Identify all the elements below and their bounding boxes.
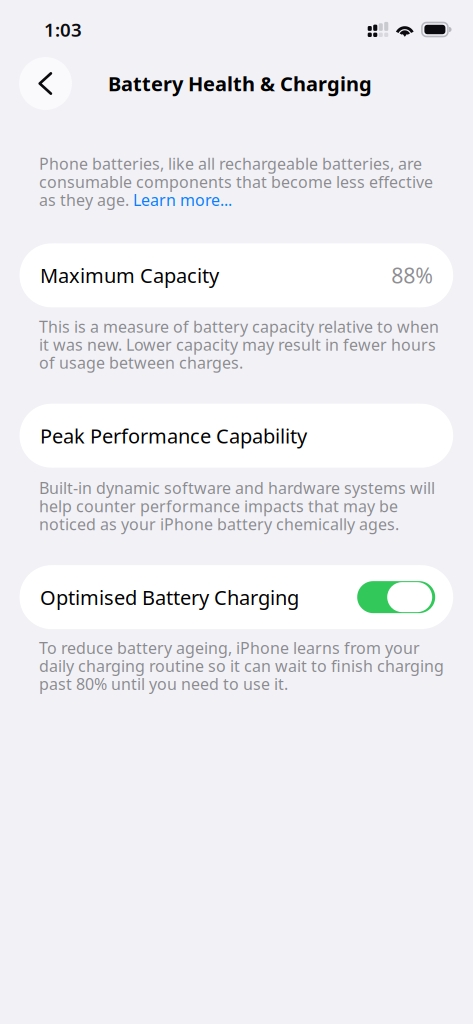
staticText: Optimised Battery Charging xyxy=(40,584,299,610)
button[interactable]: Back xyxy=(19,57,72,110)
staticText: Maximum Capacity xyxy=(40,262,219,289)
staticText: help counter performance impacts that ma… xyxy=(39,495,398,516)
staticText: Learn more... xyxy=(133,189,232,210)
staticText: consumable components that become less e… xyxy=(39,171,433,192)
staticText: To reduce battery ageing, iPhone learns … xyxy=(39,637,420,658)
staticText: Peak Performance Capability xyxy=(40,422,307,449)
staticText: 1:03 xyxy=(44,17,82,42)
staticText: as they age. xyxy=(39,189,133,210)
button[interactable]: Learn more... xyxy=(133,189,232,210)
staticText: This is a measure of battery capacity re… xyxy=(39,316,439,337)
staticText: past 80% until you need to use it. xyxy=(39,673,288,694)
button[interactable]: Optimised Battery Charging xyxy=(357,581,435,613)
staticText: it was new. Lower capacity may result in… xyxy=(39,334,436,355)
button[interactable]: Peak Performance Capability xyxy=(0,404,473,468)
staticText: 88% xyxy=(391,261,433,289)
staticText: daily charging routine so it can wait to… xyxy=(39,655,444,676)
staticText: noticed as your iPhone battery chemicall… xyxy=(39,513,399,535)
staticText: Battery Health & Charging xyxy=(108,70,372,97)
staticText: Built-in dynamic software and hardware s… xyxy=(39,477,435,498)
staticText: Phone batteries, like all rechargeable b… xyxy=(39,153,422,174)
staticText: of usage between charges. xyxy=(39,352,243,373)
